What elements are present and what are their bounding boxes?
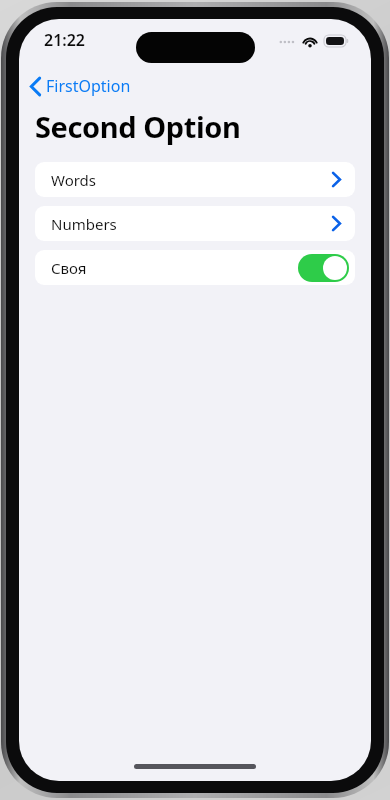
staticText: FirstOption	[46, 75, 131, 97]
staticText: Second Option	[35, 107, 241, 146]
staticText: Своя	[51, 258, 87, 278]
button[interactable]: FirstOption	[26, 73, 141, 99]
staticText: Numbers	[51, 214, 117, 234]
staticText: 21:22	[44, 29, 86, 51]
button[interactable]: Своя toggle, on	[298, 254, 349, 282]
button[interactable]: Своя	[35, 250, 355, 285]
button[interactable]: Numbers	[35, 206, 355, 241]
staticText: Words	[51, 170, 97, 190]
button[interactable]: Words	[35, 162, 355, 197]
